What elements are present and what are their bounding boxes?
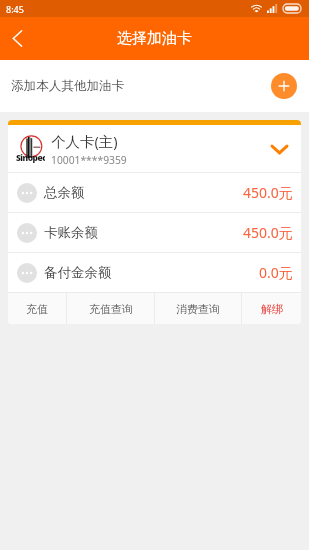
button[interactable]: 总余额 [8,173,301,212]
staticText: 充值查询 [89,302,133,316]
button[interactable]: 备付金余额 [8,253,301,292]
button[interactable]: Back [0,17,34,60]
staticText: 450.0元 [243,183,293,202]
staticText: 卡账余额 [44,224,98,241]
staticText: 备付金余额 [44,264,112,281]
button[interactable]: 充值查询 [67,293,154,324]
button[interactable]: 卡账余额 [8,213,301,252]
button[interactable]: 解绑 [242,293,301,324]
staticText: Sinopec [16,152,45,164]
staticText: 0.0元 [259,263,293,282]
staticText: 解绑 [261,302,283,316]
staticText: 消费查询 [176,302,220,316]
staticText: 8:45 [6,3,24,15]
staticText: 充值 [26,302,48,316]
staticText: 10001****9359 [51,153,127,167]
staticText: 添加本人其他加油卡 [11,78,125,94]
button[interactable]: 消费查询 [155,293,241,324]
staticText: 总余额 [44,184,85,201]
button[interactable]: Sinopec [8,125,301,172]
staticText: 选择加油卡 [117,29,192,48]
staticText: 个人卡(主) [51,131,118,151]
button[interactable]: Add card [271,73,297,99]
staticText: 450.0元 [243,223,293,242]
button[interactable]: 充值 [8,293,66,324]
